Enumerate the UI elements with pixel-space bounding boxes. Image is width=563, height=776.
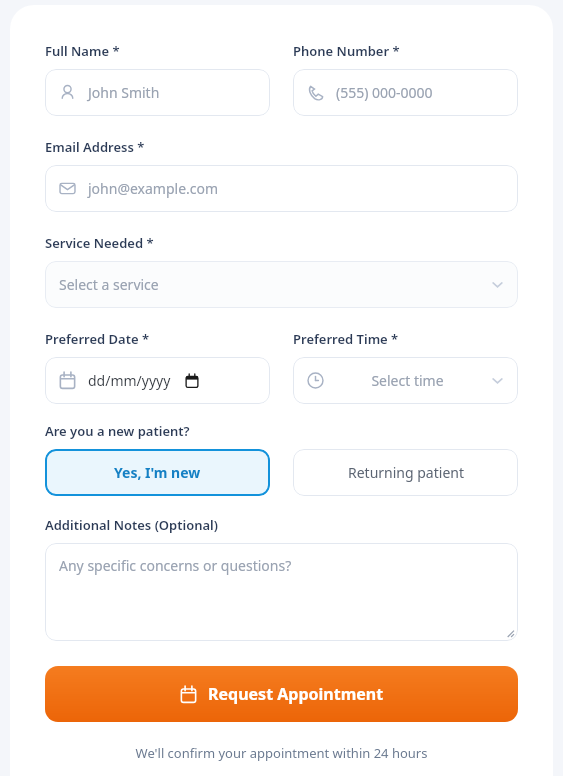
button[interactable]: Yes, I'm new [45, 449, 270, 496]
staticText: (555) 000-0000 [336, 83, 433, 102]
other: Pick date [185, 374, 199, 388]
button[interactable]: Select time [293, 357, 518, 404]
staticText: Phone Number * [293, 42, 400, 60]
staticText: Email Address * [45, 138, 145, 156]
button[interactable]: (555) 000-0000 [293, 69, 518, 116]
button[interactable]: dd/mm/yyyy [45, 357, 270, 404]
staticText: Additional Notes (Optional) [45, 516, 218, 534]
staticText: Yes, I'm new [114, 463, 201, 482]
button[interactable]: John Smith [45, 69, 270, 116]
staticText: Service Needed * [45, 234, 154, 252]
staticText: john@example.com [88, 179, 219, 198]
staticText: Are you a new patient? [45, 422, 190, 440]
staticText: Select a service [59, 275, 491, 294]
button[interactable]: Any specific concerns or questions? [45, 543, 518, 641]
staticText: Any specific concerns or questions? [59, 556, 292, 575]
staticText: Preferred Date * [45, 330, 150, 348]
staticText: Preferred Time * [293, 330, 399, 348]
button[interactable]: john@example.com [45, 165, 518, 212]
staticText: Full Name * [45, 42, 120, 60]
staticText: dd/mm/yyyy [88, 371, 171, 390]
button[interactable]: Returning patient [293, 449, 518, 496]
staticText: John Smith [88, 83, 160, 102]
staticText: Returning patient [348, 463, 464, 482]
button[interactable]: Select a service [45, 261, 518, 308]
staticText: We'll confirm your appointment within 24… [45, 744, 518, 762]
button[interactable]: Request Appointment [45, 666, 518, 722]
staticText: Select time [324, 371, 491, 390]
staticText: Request Appointment [208, 683, 384, 705]
